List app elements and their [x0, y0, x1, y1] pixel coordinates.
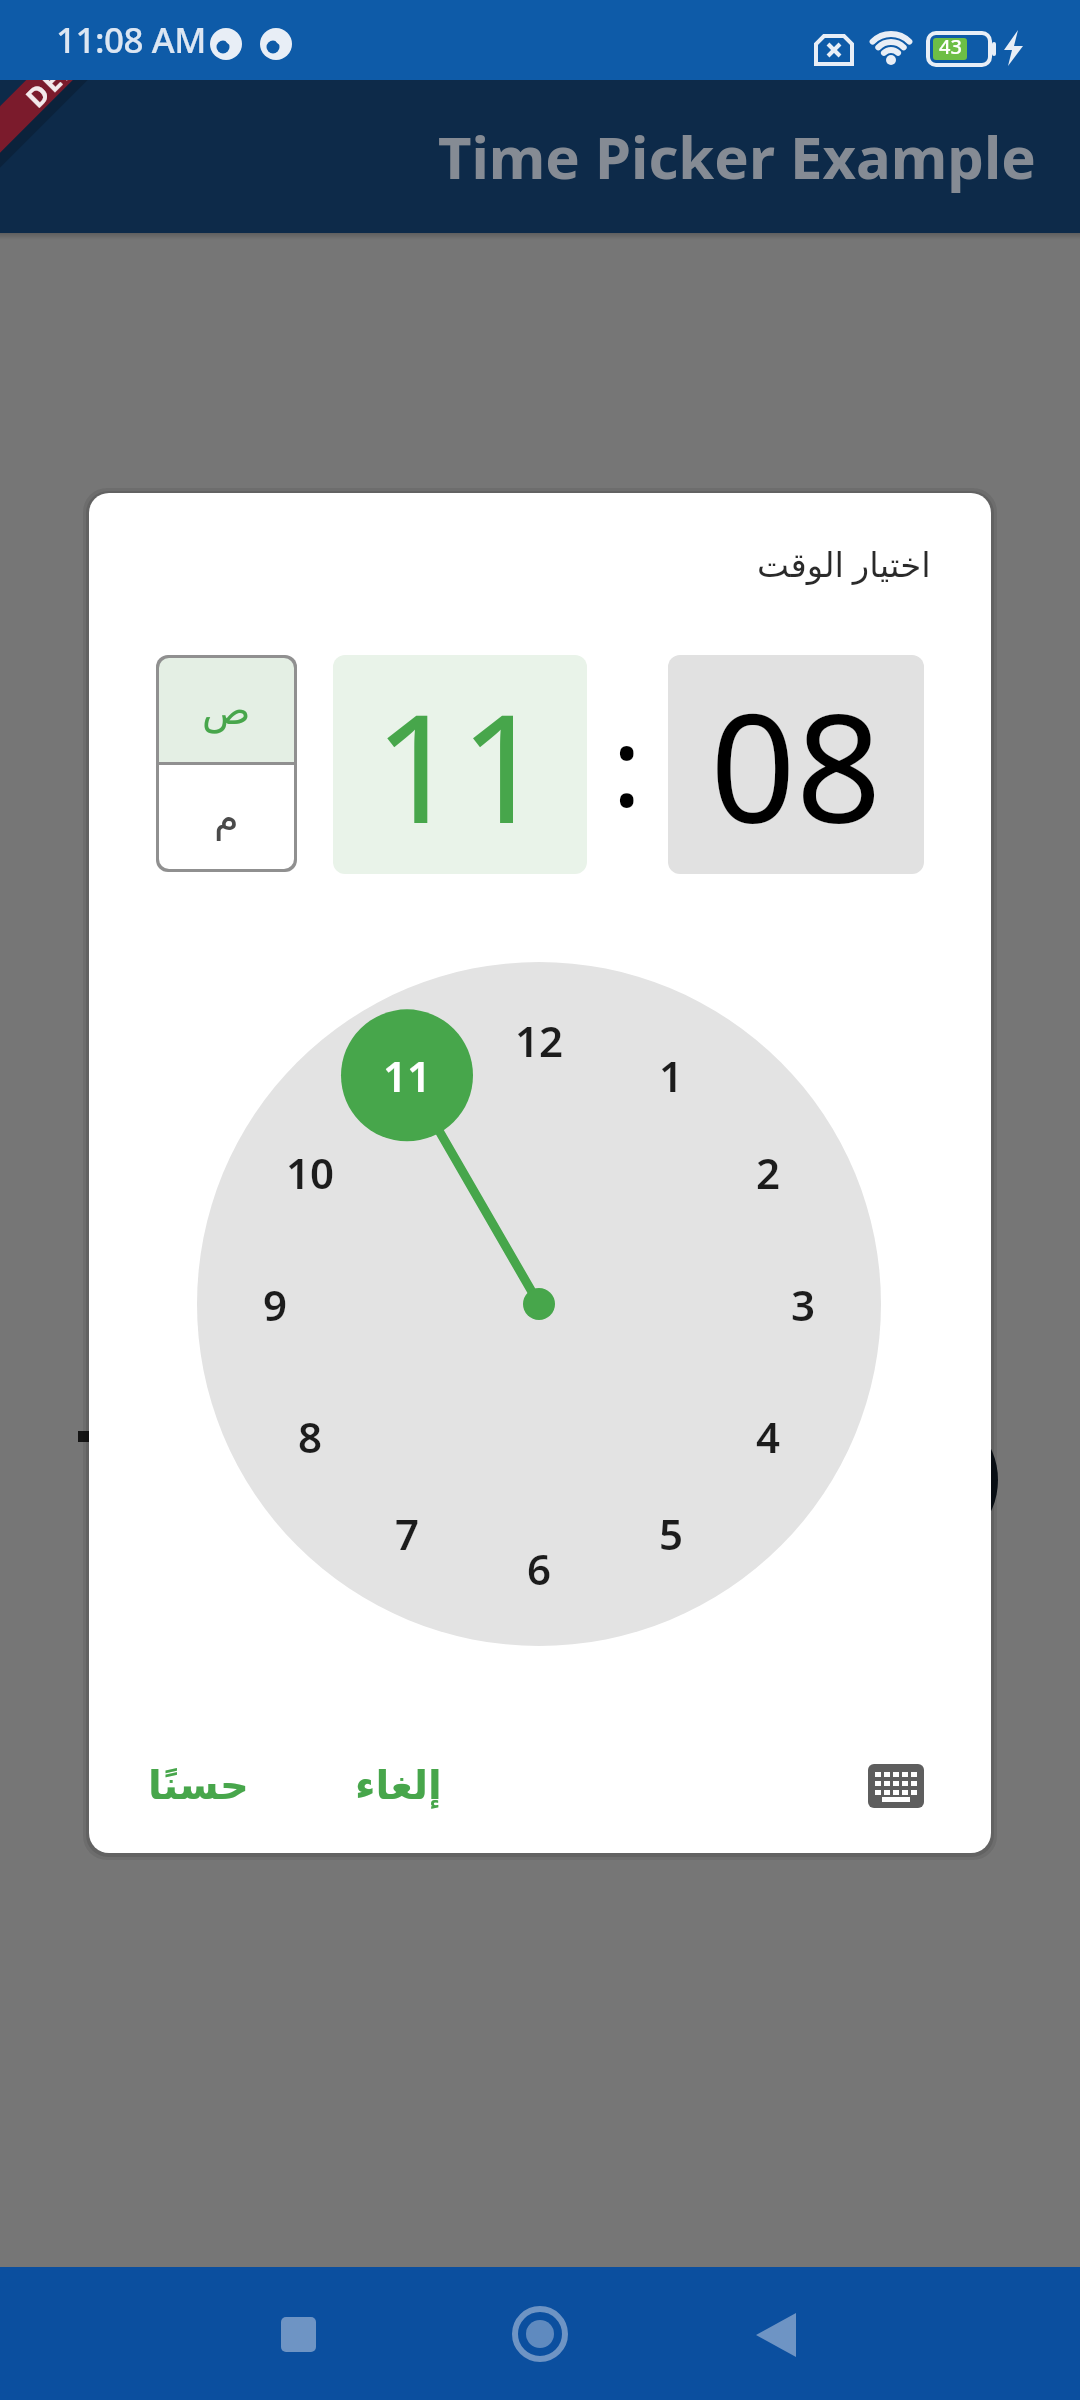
- button[interactable]: 5: [626, 1488, 716, 1578]
- button[interactable]: [512, 2306, 568, 2362]
- staticText: DEBUG: [17, 16, 113, 112]
- staticText: 6: [527, 1540, 552, 1597]
- staticText: 8: [298, 1408, 323, 1465]
- button[interactable]: 2: [723, 1127, 813, 1217]
- button[interactable]: إلغاء: [343, 1745, 453, 1825]
- staticText: إلغاء: [355, 1762, 442, 1809]
- staticText: 08: [710, 663, 882, 867]
- button[interactable]: حسنًا: [143, 1745, 253, 1825]
- button[interactable]: 1: [626, 1030, 716, 1120]
- staticText: اختيار الوقت: [757, 541, 931, 587]
- button[interactable]: ص: [159, 658, 294, 762]
- staticText: 12: [515, 1012, 564, 1069]
- staticText: 7: [395, 1505, 420, 1562]
- button[interactable]: 10: [265, 1127, 355, 1217]
- staticText: :: [612, 688, 642, 838]
- button[interactable]: [752, 2313, 802, 2363]
- staticText: 2: [756, 1144, 781, 1201]
- button[interactable]: 6: [494, 1523, 584, 1613]
- staticText: 10: [286, 1144, 335, 1201]
- button[interactable]: [861, 1755, 931, 1817]
- staticText: م: [214, 794, 239, 841]
- button[interactable]: [281, 2317, 316, 2352]
- button[interactable]: م: [159, 765, 294, 869]
- staticText: 11: [383, 1047, 432, 1104]
- staticText: 4: [756, 1408, 781, 1465]
- staticText: 5: [659, 1505, 684, 1562]
- staticText: 3: [791, 1276, 816, 1333]
- button[interactable]: 4: [723, 1391, 813, 1481]
- button[interactable]: 11: [333, 655, 587, 874]
- button[interactable]: 9: [230, 1259, 320, 1349]
- staticText: 11: [374, 663, 546, 867]
- staticText: 1: [659, 1047, 684, 1104]
- staticText: 9: [263, 1276, 288, 1333]
- staticText: Time Picker Example: [438, 117, 1036, 196]
- button[interactable]: 7: [362, 1488, 452, 1578]
- staticText: ص: [202, 687, 251, 734]
- staticText: حسنًا: [148, 1762, 249, 1809]
- button[interactable]: 8: [265, 1391, 355, 1481]
- button[interactable]: 11: [362, 1030, 452, 1120]
- button[interactable]: 08: [668, 655, 924, 874]
- button[interactable]: 12: [494, 995, 584, 1085]
- staticText: 11:08 AM: [56, 16, 206, 64]
- staticText: 43: [939, 33, 962, 55]
- button[interactable]: 3: [758, 1259, 848, 1349]
